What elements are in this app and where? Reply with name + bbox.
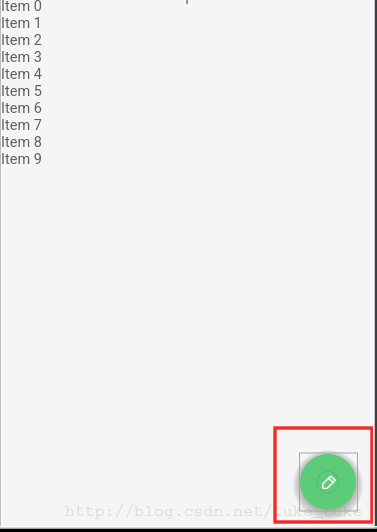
- staticText: Item 6: [1, 100, 42, 117]
- staticText: Item 2: [1, 32, 42, 49]
- staticText: Item 4: [1, 66, 42, 83]
- button[interactable]: Edit: [300, 454, 356, 510]
- button[interactable]: Item 6: [0, 100, 120, 117]
- button[interactable]: Item 7: [0, 117, 120, 134]
- staticText: Item 0: [1, 0, 42, 15]
- staticText: Item 7: [1, 117, 42, 134]
- button[interactable]: Item 8: [0, 134, 120, 151]
- staticText: http://blog.csdn.net/tuke_tuke: [65, 502, 362, 521]
- button[interactable]: Item 9: [0, 151, 120, 168]
- button[interactable]: Item 5: [0, 83, 120, 100]
- staticText: Item 1: [1, 15, 42, 32]
- staticText: Item 9: [1, 151, 42, 168]
- staticText: Item 8: [1, 134, 42, 151]
- button[interactable]: Item 1: [0, 15, 120, 32]
- button[interactable]: Item 3: [0, 49, 120, 66]
- button[interactable]: Item 4: [0, 66, 120, 83]
- staticText: Item 5: [1, 83, 42, 100]
- button[interactable]: Item 2: [0, 32, 120, 49]
- staticText: Item 3: [1, 49, 42, 66]
- button[interactable]: Item 0: [0, 0, 120, 15]
